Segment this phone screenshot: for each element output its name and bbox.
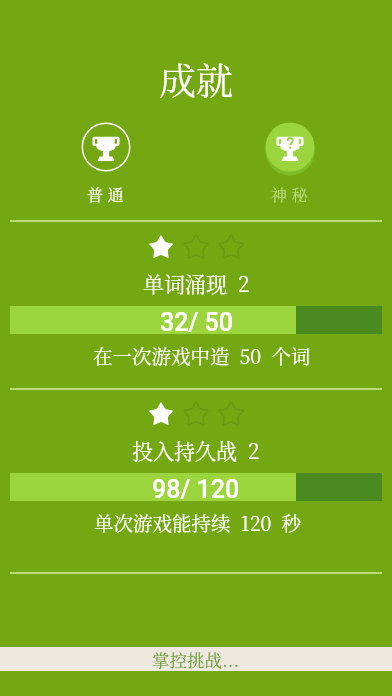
staticText: 掌控挑战... <box>152 647 240 671</box>
staticText: 投入持久战 2 <box>132 435 260 465</box>
button[interactable]: 神秘 <box>246 119 334 206</box>
staticText: 单次游戏能持续 120 秒 <box>94 509 301 537</box>
other: 神秘 <box>262 119 318 175</box>
staticText: 成就 <box>159 52 233 105</box>
staticText: 在一次游戏中造 50 个词 <box>93 342 311 370</box>
button[interactable]: 掌控挑战... <box>0 647 392 671</box>
other: 普通 <box>78 119 134 175</box>
button[interactable]: 普通 <box>62 119 150 206</box>
button[interactable]: 单词涌现 2 <box>0 221 392 389</box>
staticText: 神秘 <box>271 183 313 206</box>
staticText: 98/ 120 <box>152 475 240 503</box>
staticText: 单词涌现 2 <box>143 268 250 298</box>
staticText: 普通 <box>87 183 129 206</box>
button[interactable]: 投入持久战 2 <box>0 388 392 572</box>
staticText: 32/ 50 <box>160 308 233 336</box>
